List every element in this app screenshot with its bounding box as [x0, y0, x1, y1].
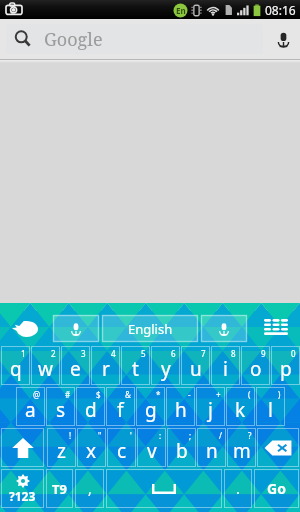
- staticText: .: [236, 479, 240, 498]
- button[interactable]: ): [256, 387, 285, 426]
- staticText: #: [65, 389, 71, 400]
- staticText: @: [33, 389, 41, 400]
- button[interactable]: 2: [31, 346, 60, 385]
- button[interactable]: Space: [106, 469, 222, 508]
- staticText: -: [188, 389, 191, 400]
- staticText: k: [235, 397, 246, 423]
- button[interactable]: ": [77, 428, 106, 467]
- staticText: 5: [141, 348, 146, 359]
- button[interactable]: 8: [211, 346, 240, 385]
- button[interactable]: 1: [1, 346, 30, 385]
- button[interactable]: &: [106, 387, 135, 426]
- staticText: ,: [88, 479, 92, 498]
- staticText: 9: [261, 348, 266, 359]
- button[interactable]: *: [136, 387, 165, 426]
- staticText: +: [216, 389, 221, 400]
- staticText: h: [175, 397, 187, 423]
- staticText: 0: [291, 348, 296, 359]
- button[interactable]: Voice input: [53, 315, 99, 342]
- button[interactable]: 6: [151, 346, 180, 385]
- staticText: j: [208, 397, 213, 423]
- button[interactable]: Google: [6, 24, 263, 54]
- staticText: i: [223, 356, 228, 382]
- staticText: T9: [52, 480, 67, 498]
- button[interactable]: ?123: [1, 469, 44, 508]
- staticText: f: [117, 397, 124, 423]
- staticText: :: [159, 430, 162, 441]
- staticText: 08:16: [265, 2, 296, 18]
- button[interactable]: ?: [227, 428, 256, 467]
- staticText: 4: [111, 348, 116, 359]
- staticText: *: [156, 389, 161, 400]
- staticText: ': [130, 430, 132, 441]
- staticText: c: [117, 438, 127, 464]
- staticText: o: [250, 356, 262, 382]
- button[interactable]: @: [16, 387, 45, 426]
- button[interactable]: .: [224, 469, 252, 508]
- staticText: x: [86, 438, 97, 464]
- button[interactable]: Go: [254, 469, 299, 508]
- staticText: 6: [171, 348, 176, 359]
- button[interactable]: ;: [167, 428, 196, 467]
- staticText: z: [57, 438, 66, 464]
- button[interactable]: ': [107, 428, 136, 467]
- button[interactable]: #: [46, 387, 75, 426]
- button[interactable]: 5: [121, 346, 150, 385]
- button[interactable]: +: [196, 387, 225, 426]
- staticText: 7: [201, 348, 206, 359]
- button[interactable]: 3: [61, 346, 90, 385]
- button[interactable]: English: [102, 315, 198, 342]
- button[interactable]: Voice input 2: [201, 315, 247, 342]
- staticText: 8: [231, 348, 236, 359]
- staticText: ): [278, 389, 281, 400]
- staticText: ?123: [9, 488, 36, 504]
- button[interactable]: 7: [181, 346, 210, 385]
- staticText: g: [145, 397, 157, 423]
- staticText: !: [69, 430, 72, 441]
- staticText: q: [10, 356, 22, 382]
- button[interactable]: 4: [91, 346, 120, 385]
- staticText: b: [176, 438, 188, 464]
- button[interactable]: GO Keyboard menu: [8, 316, 44, 342]
- staticText: l: [268, 397, 273, 423]
- button[interactable]: :: [137, 428, 166, 467]
- button[interactable]: (: [226, 387, 255, 426]
- staticText: t: [132, 356, 139, 382]
- button[interactable]: Shift: [1, 428, 44, 467]
- staticText: /: [219, 430, 222, 441]
- staticText: Google: [44, 27, 103, 52]
- staticText: ": [98, 430, 102, 441]
- button[interactable]: /: [197, 428, 226, 467]
- staticText: s: [56, 397, 66, 423]
- staticText: d: [85, 397, 97, 423]
- button[interactable]: 9: [241, 346, 270, 385]
- staticText: $: [96, 389, 101, 400]
- button[interactable]: 0: [271, 346, 300, 385]
- staticText: Go: [267, 479, 286, 498]
- staticText: 3: [81, 348, 86, 359]
- staticText: v: [147, 438, 157, 464]
- staticText: n: [206, 438, 218, 464]
- staticText: y: [161, 356, 171, 382]
- staticText: (: [248, 389, 251, 400]
- staticText: 2: [51, 348, 56, 359]
- button[interactable]: T9: [46, 469, 73, 508]
- button[interactable]: ,: [75, 469, 104, 508]
- staticText: w: [38, 356, 53, 382]
- button[interactable]: Switch keyboard: [252, 315, 300, 342]
- staticText: e: [70, 356, 81, 382]
- button[interactable]: $: [76, 387, 105, 426]
- staticText: &: [125, 389, 131, 400]
- button[interactable]: Backspace: [257, 428, 299, 467]
- staticText: p: [280, 356, 292, 382]
- staticText: 1: [21, 348, 26, 359]
- staticText: u: [190, 356, 202, 382]
- staticText: m: [233, 438, 251, 464]
- button[interactable]: -: [166, 387, 195, 426]
- button[interactable]: Voice search: [267, 19, 300, 59]
- staticText: ;: [189, 430, 192, 441]
- button[interactable]: !: [47, 428, 76, 467]
- staticText: English: [128, 320, 173, 338]
- staticText: En: [176, 5, 186, 16]
- staticText: a: [25, 397, 36, 423]
